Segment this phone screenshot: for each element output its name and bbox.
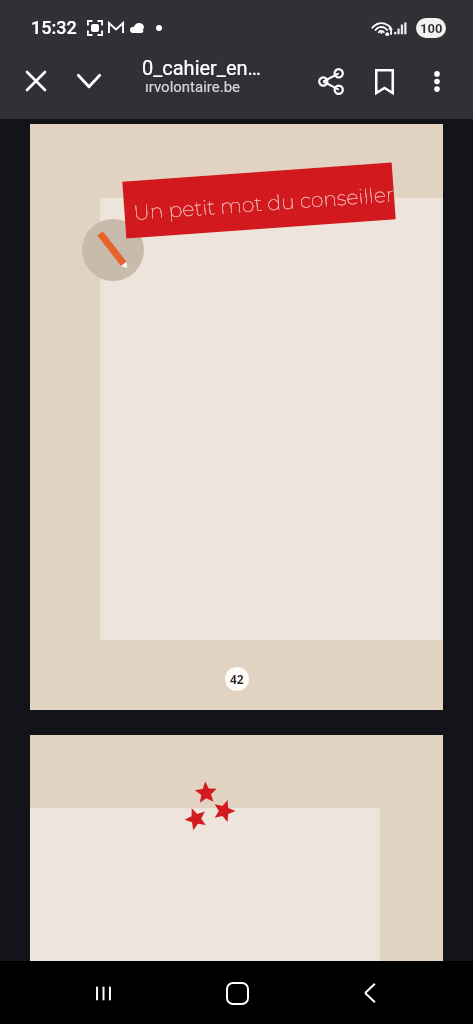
staticText: ırvolontaire.be xyxy=(145,78,241,96)
button[interactable]: Collapse xyxy=(65,57,113,105)
button[interactable]: Share xyxy=(307,57,355,105)
button[interactable]: Recents xyxy=(73,963,133,1023)
button[interactable]: Back xyxy=(340,963,400,1023)
button[interactable]: Bookmark xyxy=(360,57,408,105)
button[interactable]: More options xyxy=(413,57,461,105)
staticText: 0_cahier_en… xyxy=(142,56,261,79)
staticText: Un petit mot du conseiller xyxy=(133,181,395,225)
staticText: 42 xyxy=(230,671,244,687)
button[interactable]: Close xyxy=(12,57,60,105)
button[interactable]: Home xyxy=(207,963,267,1023)
staticText: 100 xyxy=(420,21,443,36)
staticText: 15:32 xyxy=(31,17,77,38)
